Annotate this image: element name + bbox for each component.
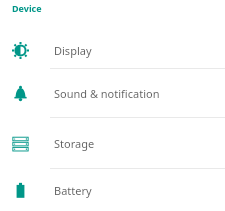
other: Sound and notification — [12, 85, 29, 102]
staticText: Battery — [54, 183, 92, 198]
staticText: Device — [12, 2, 42, 14]
button[interactable]: Storage — [0, 118, 225, 168]
staticText: Display — [54, 43, 92, 58]
staticText: Storage — [54, 136, 95, 151]
other: Display — [12, 42, 29, 59]
button[interactable]: Sound and notification — [0, 69, 225, 117]
button[interactable]: Display — [0, 33, 225, 68]
staticText: Sound & notification — [54, 86, 160, 101]
other: Storage — [12, 135, 29, 152]
button[interactable]: Battery — [0, 169, 225, 211]
other: Battery — [12, 182, 29, 199]
